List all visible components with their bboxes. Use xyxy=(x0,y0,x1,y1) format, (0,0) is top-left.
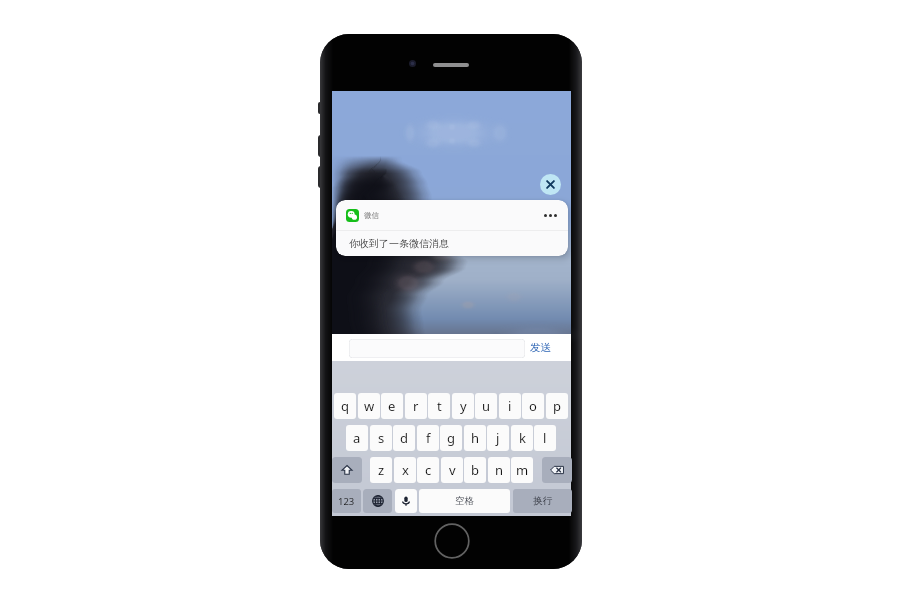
staticText: q xyxy=(341,397,349,415)
staticText: x xyxy=(402,461,409,479)
button[interactable]: m xyxy=(511,457,533,483)
staticText: b xyxy=(471,461,479,479)
staticText: 123 xyxy=(338,495,355,508)
button[interactable]: p xyxy=(546,393,568,419)
staticText: d xyxy=(400,429,408,447)
button[interactable]: 空格 xyxy=(419,489,510,513)
button[interactable]: e xyxy=(381,393,403,419)
staticText: y xyxy=(460,397,467,415)
staticText: c xyxy=(425,461,432,479)
button[interactable]: a xyxy=(346,425,368,451)
staticText: s xyxy=(378,429,385,447)
button[interactable]: k xyxy=(511,425,533,451)
button[interactable]: i xyxy=(499,393,521,419)
staticText: g xyxy=(447,429,455,447)
button[interactable]: 换行 xyxy=(513,489,572,513)
button[interactable]: z xyxy=(370,457,392,483)
staticText: w xyxy=(364,397,375,415)
staticText: k xyxy=(519,429,526,447)
staticText: o xyxy=(529,397,537,415)
button[interactable]: Change keyboard xyxy=(363,489,392,513)
button[interactable]: 发送 xyxy=(528,338,552,357)
button[interactable]: n xyxy=(488,457,510,483)
staticText: 换行 xyxy=(533,495,552,507)
button[interactable] xyxy=(349,339,525,358)
button[interactable]: s xyxy=(370,425,392,451)
staticText: r xyxy=(413,397,419,415)
button[interactable]: v xyxy=(441,457,463,483)
button[interactable]: d xyxy=(393,425,415,451)
button[interactable]: 微信 xyxy=(336,200,568,256)
staticText: 微信 xyxy=(364,211,379,220)
staticText: f xyxy=(426,429,431,447)
staticText: n xyxy=(495,461,504,479)
staticText: e xyxy=(388,397,396,415)
staticText: p xyxy=(553,397,561,415)
button[interactable]: Backspace xyxy=(542,457,572,483)
button[interactable]: g xyxy=(440,425,462,451)
button[interactable]: o xyxy=(522,393,544,419)
button[interactable]: q xyxy=(334,393,356,419)
staticText: a xyxy=(353,429,361,447)
staticText: 空格 xyxy=(455,495,474,507)
button[interactable]: f xyxy=(417,425,439,451)
button[interactable]: l xyxy=(534,425,556,451)
button[interactable]: Dictate xyxy=(395,489,417,513)
staticText: z xyxy=(378,461,385,479)
button[interactable]: h xyxy=(464,425,486,451)
button[interactable]: y xyxy=(452,393,474,419)
staticText: 你收到了一条微信消息 xyxy=(349,237,449,250)
button[interactable]: x xyxy=(394,457,416,483)
button[interactable]: w xyxy=(358,393,380,419)
staticText: m xyxy=(516,461,529,479)
button[interactable]: b xyxy=(464,457,486,483)
button[interactable]: t xyxy=(428,393,450,419)
staticText: v xyxy=(449,461,456,479)
staticText: u xyxy=(482,397,491,415)
button[interactable]: Close xyxy=(540,174,561,195)
button[interactable]: r xyxy=(405,393,427,419)
staticText: i xyxy=(508,397,512,415)
button[interactable]: u xyxy=(475,393,497,419)
button[interactable]: c xyxy=(417,457,439,483)
button[interactable]: Shift xyxy=(332,457,362,483)
staticText: l xyxy=(543,429,547,447)
button[interactable]: j xyxy=(487,425,509,451)
staticText: t xyxy=(437,397,442,415)
staticText: h xyxy=(471,429,480,447)
staticText: j xyxy=(496,429,500,447)
staticText: 发送 xyxy=(530,341,551,354)
button[interactable]: 123 xyxy=(332,489,361,513)
